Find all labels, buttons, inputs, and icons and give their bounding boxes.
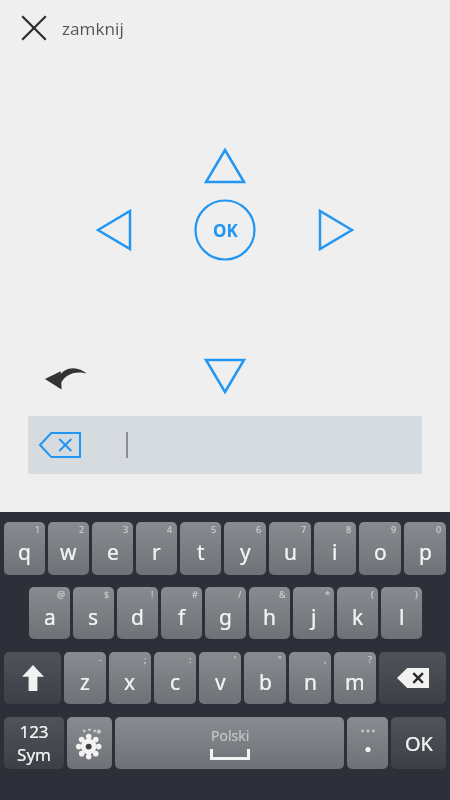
staticText: u (284, 538, 297, 567)
staticText: @ (57, 588, 66, 600)
staticText: f (178, 603, 186, 632)
staticText: ' (234, 653, 237, 665)
staticText: 2 (79, 523, 85, 535)
staticText: OK (213, 219, 238, 242)
button[interactable]: 123 (4, 717, 64, 769)
button[interactable]: ? (334, 652, 376, 704)
staticText: " (278, 653, 282, 665)
staticText: 8 (346, 523, 352, 535)
button[interactable]: Polski (115, 717, 344, 769)
staticText: r (152, 538, 161, 567)
button[interactable]: - (64, 652, 106, 704)
button[interactable]: * (293, 587, 334, 639)
button[interactable]: 6 (224, 522, 266, 575)
staticText: j (311, 603, 317, 632)
button[interactable]: 1 (4, 522, 45, 575)
staticText: & (279, 588, 286, 600)
button[interactable]: ! (117, 587, 158, 639)
staticText: 5 (211, 523, 217, 535)
staticText: o (374, 538, 387, 567)
staticText: k (352, 603, 364, 632)
button[interactable]: 7 (269, 522, 311, 575)
button[interactable]: " (244, 652, 286, 704)
button[interactable]: Down (193, 344, 257, 408)
staticText: 123 (19, 720, 49, 743)
button[interactable]: Backspace (28, 416, 422, 474)
button[interactable]: Backspace (379, 652, 446, 704)
button[interactable]: Zamknij (12, 6, 56, 50)
staticText: Sym (17, 743, 51, 766)
staticText: 1 (35, 523, 41, 535)
staticText: : (189, 653, 192, 665)
staticText: q (18, 538, 31, 567)
button[interactable]: : (154, 652, 196, 704)
button[interactable] (347, 717, 388, 769)
button[interactable]: ) (381, 587, 422, 639)
button[interactable]: ; (109, 652, 151, 704)
button[interactable]: Left (82, 198, 146, 262)
button[interactable]: $ (73, 587, 114, 639)
button[interactable]: 0 (404, 522, 446, 575)
staticText: i (332, 538, 338, 567)
button[interactable]: Shift (4, 652, 61, 704)
staticText: Polski (211, 726, 250, 745)
button[interactable]: / (205, 587, 246, 639)
staticText: * (325, 588, 330, 600)
staticText: b (259, 668, 272, 697)
staticText: # (192, 588, 198, 600)
staticText: v (215, 668, 226, 697)
button[interactable]: Backspace (38, 430, 82, 460)
staticText: 3 (123, 523, 129, 535)
staticText: a (44, 603, 56, 632)
staticText: 4 (167, 523, 173, 535)
button[interactable]: ( (337, 587, 378, 639)
button[interactable]: 3 (92, 522, 133, 575)
staticText: $ (104, 588, 110, 600)
staticText: / (238, 588, 242, 600)
button[interactable]: Up (193, 134, 257, 198)
staticText: g (219, 603, 232, 632)
button[interactable]: ' (199, 652, 241, 704)
button[interactable]: @ (29, 587, 70, 639)
staticText: t (197, 538, 205, 567)
button[interactable]: & (249, 587, 290, 639)
button[interactable]: 4 (136, 522, 177, 575)
button[interactable]: , (289, 652, 331, 704)
staticText: x (124, 668, 136, 697)
staticText: s (88, 603, 99, 632)
staticText: n (304, 668, 317, 697)
staticText: d (131, 603, 144, 632)
staticText: - (99, 653, 102, 665)
staticText: , (324, 653, 327, 665)
staticText: zamknij (62, 17, 124, 40)
staticText: OK (405, 730, 433, 757)
button[interactable]: 2 (48, 522, 89, 575)
staticText: ! (151, 588, 154, 600)
button[interactable]: 5 (180, 522, 221, 575)
button[interactable]: Back (38, 348, 94, 404)
button[interactable]: OK (194, 199, 256, 261)
staticText: ) (415, 588, 418, 600)
staticText: 0 (436, 523, 442, 535)
staticText: 7 (301, 523, 307, 535)
staticText: l (399, 603, 405, 632)
button[interactable]: OK (391, 717, 446, 769)
staticText: z (80, 668, 90, 697)
button[interactable]: 8 (314, 522, 356, 575)
staticText: ( (371, 588, 374, 600)
button[interactable]: Right (304, 198, 368, 262)
staticText: c (170, 668, 181, 697)
staticText: 6 (256, 523, 262, 535)
staticText: ; (144, 653, 147, 665)
staticText: y (240, 538, 251, 567)
staticText: e (107, 538, 119, 567)
staticText: m (345, 668, 365, 697)
button[interactable]: 9 (359, 522, 401, 575)
staticText: w (60, 538, 77, 567)
staticText: ? (368, 653, 372, 665)
staticText: 9 (391, 523, 397, 535)
staticText: p (419, 538, 432, 567)
button[interactable]: Settings (67, 717, 112, 769)
button[interactable]: # (161, 587, 202, 639)
staticText: h (263, 603, 276, 632)
